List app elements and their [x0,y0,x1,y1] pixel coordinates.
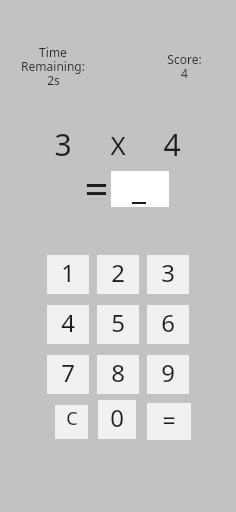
button[interactable]: 5 [97,305,139,344]
staticText: = [162,404,176,435]
button[interactable]: 3 [147,255,189,294]
staticText: = [84,159,109,216]
staticText: 7 [61,356,75,389]
button[interactable]: 0 [98,400,136,439]
button[interactable]: 9 [147,355,189,394]
staticText: 2 [111,256,125,289]
button[interactable]: 8 [97,355,139,394]
staticText: C [66,406,78,431]
staticText: 3 [54,124,72,165]
button[interactable]: 2 [97,255,139,294]
staticText: X [110,127,126,162]
button[interactable]: 4 [47,305,89,344]
button[interactable] [111,171,169,207]
button[interactable]: = [147,403,191,440]
staticText: Remaining: [21,58,85,74]
staticText: Score: [167,51,202,67]
staticText: 3 [161,256,175,289]
staticText: 4 [163,124,181,165]
staticText: 5 [111,306,125,339]
staticText: 6 [161,306,175,339]
button[interactable]: 1 [47,255,89,294]
staticText: 4 [61,306,75,339]
staticText: 0 [110,401,124,434]
button[interactable]: 7 [47,355,89,394]
staticText: 9 [161,356,175,389]
staticText: 4 [181,65,188,81]
staticText: Time [39,44,67,60]
button[interactable]: C [55,405,88,439]
staticText: 8 [111,356,125,389]
staticText: 1 [61,256,75,289]
button[interactable]: 6 [147,305,189,344]
staticText: 2s [47,72,60,88]
